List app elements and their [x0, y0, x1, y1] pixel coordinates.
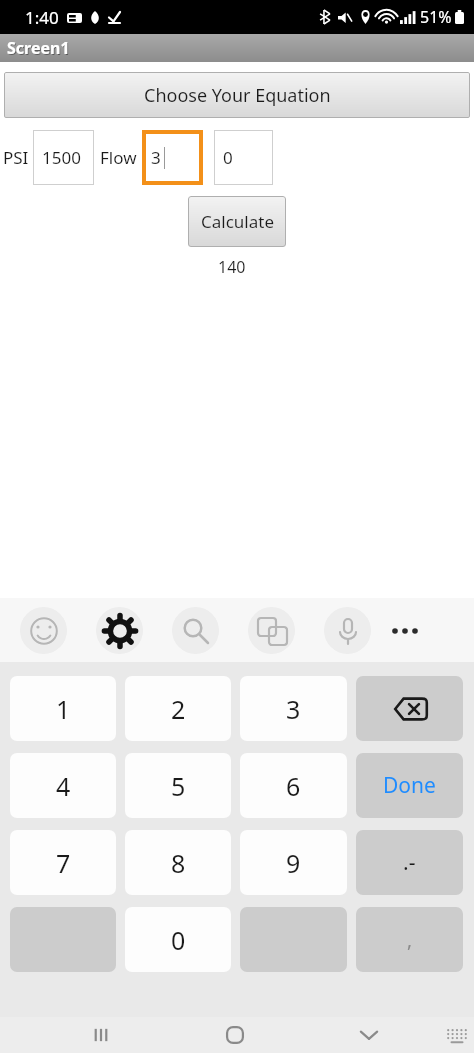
staticText: 140	[218, 256, 246, 278]
staticText: 3	[286, 692, 301, 726]
staticText: 1:40	[25, 6, 59, 29]
button[interactable]: Switch keyboard	[439, 1017, 474, 1053]
staticText: PSI	[3, 146, 29, 169]
staticText: 2	[171, 692, 186, 726]
staticText: Screen1	[8, 38, 71, 60]
staticText: 8	[171, 846, 186, 880]
button[interactable]: 3	[240, 676, 347, 741]
button[interactable]: 2	[125, 676, 231, 741]
button[interactable]: 7	[10, 830, 116, 895]
staticText: Calculate	[201, 210, 274, 233]
button[interactable]: 0	[125, 907, 231, 972]
staticText: 0	[223, 146, 233, 169]
staticText: 6	[286, 769, 301, 803]
button[interactable]: More options	[388, 614, 422, 648]
staticText: 9	[286, 846, 301, 880]
staticText: 4	[56, 769, 71, 803]
button[interactable]: 8	[125, 830, 231, 895]
button[interactable]: .-	[356, 830, 463, 895]
staticText: .-	[403, 848, 416, 877]
button[interactable]: Emoji	[20, 607, 67, 654]
button[interactable]: Settings	[96, 607, 143, 654]
button[interactable]: Done	[356, 753, 463, 818]
staticText: 1	[56, 692, 71, 726]
button[interactable]: 1500	[33, 130, 94, 185]
staticText: 7	[56, 846, 71, 880]
staticText: 0	[171, 923, 186, 957]
button[interactable]: Voice input	[324, 607, 371, 654]
button[interactable]: 1	[10, 676, 116, 741]
button[interactable]: 6	[240, 753, 347, 818]
button[interactable]: Home	[212, 1017, 258, 1053]
button[interactable]: 0	[214, 130, 273, 185]
staticText: Choose Your Equation	[144, 83, 331, 108]
button[interactable]: Choose Your Equation	[4, 72, 470, 118]
staticText: 1500	[42, 146, 81, 169]
staticText: 51%	[420, 6, 452, 28]
staticText: Screen1	[7, 37, 70, 59]
button[interactable]: Recent apps	[78, 1017, 124, 1053]
button[interactable]: Hide keyboard	[346, 1017, 392, 1053]
button[interactable]: 9	[240, 830, 347, 895]
button[interactable]: 4	[10, 753, 116, 818]
button[interactable]: 5	[125, 753, 231, 818]
staticText: 3	[151, 146, 161, 169]
staticText: 5	[171, 769, 186, 803]
button[interactable]: Search	[172, 607, 219, 654]
staticText: Done	[383, 771, 436, 800]
button[interactable]: Calculate	[188, 196, 286, 247]
button[interactable]: 3	[142, 130, 203, 185]
staticText: ,	[407, 927, 413, 953]
button[interactable]: Translate	[248, 607, 295, 654]
button[interactable]: Backspace	[356, 676, 463, 741]
staticText: Flow	[100, 146, 137, 169]
